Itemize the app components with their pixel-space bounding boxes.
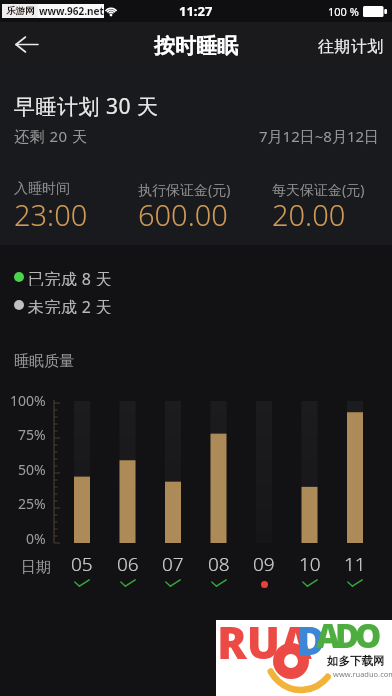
staticText: A: [316, 613, 340, 658]
staticText: 100 %: [328, 4, 359, 19]
button[interactable]: 09: [241, 551, 287, 588]
staticText: 乐游网: [6, 5, 35, 17]
staticText: 05: [71, 551, 93, 577]
button[interactable]: 05: [59, 551, 105, 587]
staticText: 75%: [18, 425, 46, 444]
staticText: 10: [299, 551, 321, 577]
staticText: 08: [208, 551, 230, 577]
staticText: 06: [117, 551, 139, 577]
button[interactable]: 11: [332, 551, 378, 587]
staticText: www.ruaduo.com: [333, 669, 392, 679]
staticText: 7月12日~8月12日: [259, 126, 380, 146]
button[interactable]: 10: [287, 551, 333, 587]
staticText: 0%: [26, 529, 46, 548]
staticText: 还剩 20 天: [14, 126, 88, 146]
staticText: 早睡计划 30 天: [14, 92, 159, 121]
staticText: 100%: [10, 391, 46, 410]
staticText: 20.00: [272, 195, 346, 234]
staticText: 日期: [21, 558, 51, 577]
staticText: 50%: [18, 460, 46, 479]
staticText: O: [355, 613, 382, 658]
staticText: 600.00: [138, 195, 228, 234]
staticText: 每天保证金(元): [272, 180, 365, 199]
button[interactable]: 返回: [0, 22, 54, 67]
button[interactable]: 06: [105, 551, 151, 587]
staticText: www.962.net: [39, 4, 104, 18]
staticText: D: [297, 614, 325, 666]
staticText: 入睡时间: [14, 180, 70, 198]
staticText: D: [335, 613, 360, 658]
staticText: 25%: [18, 494, 46, 513]
staticText: 往期计划: [318, 37, 384, 57]
staticText: 07: [162, 551, 184, 577]
staticText: 11: [344, 551, 366, 577]
staticText: 执行保证金(元): [138, 180, 231, 199]
staticText: RUA: [217, 612, 312, 672]
staticText: 11:27: [179, 2, 213, 20]
staticText: 09: [253, 551, 275, 577]
staticText: 23:00: [14, 195, 88, 234]
staticText: 已完成 8 天: [28, 268, 113, 286]
staticText: 未完成 2 天: [28, 296, 113, 314]
button[interactable]: 往期计划: [318, 22, 384, 67]
button[interactable]: 08: [196, 551, 242, 587]
staticText: 睡眠质量: [14, 352, 74, 371]
staticText: 如多下载网: [327, 654, 385, 668]
staticText: 按时睡眠: [154, 33, 238, 59]
button[interactable]: 07: [150, 551, 196, 587]
